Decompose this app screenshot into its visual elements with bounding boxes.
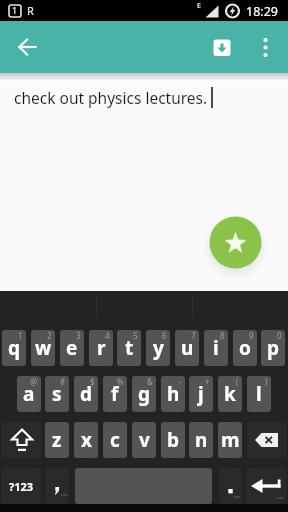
staticText: 5 [133, 330, 138, 341]
staticText: m [221, 427, 240, 453]
staticText: y [153, 335, 164, 361]
staticText: % [117, 376, 124, 387]
staticText: 8 [220, 330, 225, 341]
staticText: n [195, 427, 208, 453]
staticText: j [198, 381, 204, 407]
staticText: u [181, 335, 194, 361]
staticText: w [35, 335, 52, 361]
staticText: p [267, 335, 280, 361]
staticText: b [167, 427, 180, 453]
staticText: E [197, 1, 201, 11]
staticText: $ [90, 376, 95, 387]
staticText: 2 [47, 330, 52, 341]
staticText: - [179, 376, 182, 387]
staticText: 3 [76, 330, 81, 341]
staticText: e [66, 335, 78, 361]
staticText: f [111, 381, 119, 407]
staticText: R [27, 3, 34, 18]
staticText: i [213, 335, 219, 361]
staticText: c [110, 427, 120, 453]
staticText: l [256, 381, 262, 407]
staticText: ( [236, 376, 239, 387]
staticText: o [239, 335, 251, 361]
staticText: x [81, 427, 92, 453]
staticText: q [8, 335, 21, 361]
staticText: k [224, 381, 236, 407]
staticText: t [125, 335, 134, 361]
staticText: & [147, 376, 153, 387]
staticText: 6 [162, 330, 167, 341]
staticText: 18:29 [246, 3, 278, 20]
staticText: 4 [105, 330, 110, 341]
staticText: a [23, 381, 35, 407]
staticText: h [167, 381, 180, 407]
staticText: g [138, 381, 151, 407]
staticText: z [52, 427, 62, 453]
staticText: d [80, 381, 93, 407]
staticText: 7 [191, 330, 196, 341]
staticText: @ [30, 376, 38, 387]
staticText: # [60, 376, 66, 387]
staticText: s [52, 381, 62, 407]
staticText: check out physics lectures. [14, 87, 208, 108]
staticText: + [205, 376, 210, 387]
staticText: v [139, 427, 150, 453]
staticText: 1 [18, 330, 23, 341]
staticText: 1 [12, 4, 18, 16]
staticText: 9 [249, 330, 254, 341]
staticText: ?123 [9, 479, 34, 494]
staticText: r [97, 335, 106, 361]
staticText: 0 [277, 330, 282, 341]
staticText: ) [265, 376, 268, 387]
